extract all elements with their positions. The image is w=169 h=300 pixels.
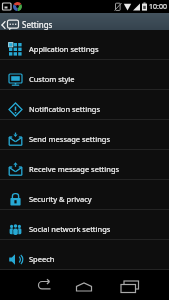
staticText: Notification settings bbox=[29, 104, 100, 114]
staticText: Speech bbox=[29, 254, 55, 264]
staticText: 10:00 bbox=[149, 2, 167, 12]
staticText: Receive message settings bbox=[29, 164, 120, 174]
staticText: Application settings bbox=[29, 44, 99, 54]
staticText: Custom style bbox=[29, 74, 75, 84]
staticText: Settings bbox=[22, 19, 53, 30]
staticText: Send message settings bbox=[29, 134, 110, 144]
staticText: Security & privacy bbox=[29, 194, 92, 204]
staticText: Social network settings bbox=[29, 224, 111, 234]
